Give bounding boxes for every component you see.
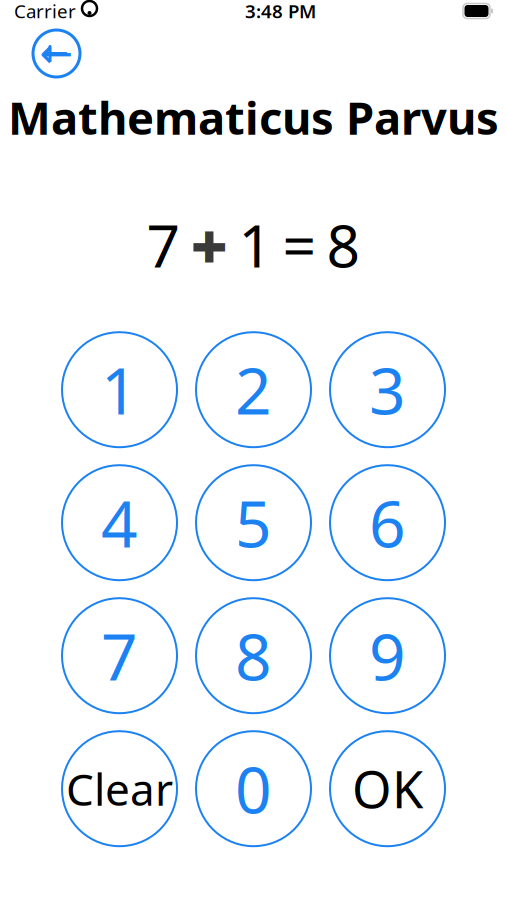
staticText: 1: [101, 347, 138, 432]
staticText: Clear: [66, 759, 173, 818]
staticText: 8: [235, 613, 272, 698]
staticText: 5: [235, 480, 272, 565]
staticText: OK: [352, 755, 423, 822]
staticText: 8: [326, 206, 360, 284]
staticText: =: [282, 206, 316, 284]
staticText: Carrier: [14, 0, 76, 23]
staticText: ←: [39, 31, 73, 76]
button[interactable]: Clear: [62, 731, 177, 846]
button[interactable]: 7: [62, 598, 177, 713]
staticText: 4: [101, 480, 138, 565]
staticText: 7: [101, 613, 138, 698]
button[interactable]: 2: [196, 332, 311, 447]
button[interactable]: 3: [330, 332, 445, 447]
staticText: 6: [369, 480, 406, 565]
staticText: 9: [369, 613, 406, 698]
staticText: 7: [146, 206, 180, 284]
staticText: 2: [235, 347, 272, 432]
button[interactable]: 1: [62, 332, 177, 447]
button[interactable]: 9: [330, 598, 445, 713]
staticText: 3: [369, 347, 406, 432]
staticText: 3:48 PM: [245, 0, 316, 23]
staticText: Mathematicus Parvus: [8, 87, 499, 147]
staticText: +: [190, 202, 228, 287]
button[interactable]: 8: [196, 598, 311, 713]
button[interactable]: OK: [330, 731, 445, 846]
button[interactable]: 0: [196, 731, 311, 846]
button[interactable]: Back: [33, 30, 80, 77]
staticText: 0: [235, 746, 272, 831]
button[interactable]: 4: [62, 465, 177, 580]
button[interactable]: 5: [196, 465, 311, 580]
button[interactable]: 6: [330, 465, 445, 580]
staticText: 1: [238, 206, 272, 284]
